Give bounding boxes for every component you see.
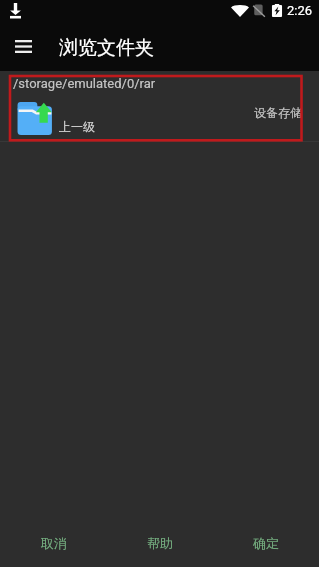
- button[interactable]: Menu: [0, 24, 47, 71]
- button[interactable]: 帮助: [107, 505, 213, 567]
- staticText: 确定: [253, 535, 279, 551]
- staticText: 设备存储: [254, 105, 302, 120]
- other: Download: [10, 3, 21, 18]
- staticText: 浏览文件夹: [59, 36, 154, 60]
- button[interactable]: 确定: [213, 505, 319, 567]
- button[interactable]: 取消: [0, 505, 107, 567]
- button[interactable]: 上一级: [0, 96, 319, 140]
- staticText: 上一级: [59, 119, 95, 134]
- staticText: 2:26: [287, 3, 313, 18]
- staticText: 取消: [41, 535, 67, 551]
- staticText: 帮助: [147, 535, 173, 551]
- staticText: /storage/emulated/0/rar: [13, 76, 156, 91]
